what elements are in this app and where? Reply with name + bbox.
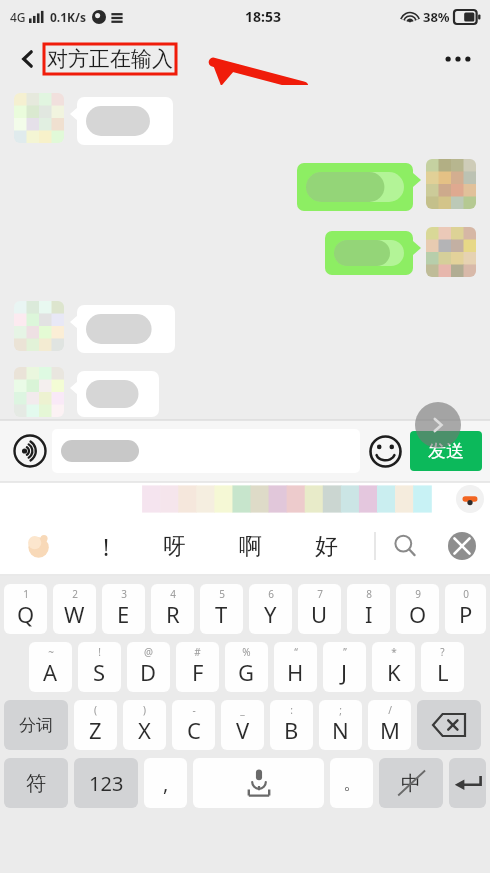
staticText: / bbox=[388, 703, 392, 717]
staticText: K bbox=[387, 657, 401, 687]
staticText: 1 bbox=[23, 587, 29, 601]
button[interactable]: ) bbox=[123, 700, 166, 750]
button[interactable]: # bbox=[176, 642, 219, 692]
button[interactable]: OK emoji bbox=[0, 516, 76, 576]
button[interactable]: 0 bbox=[445, 584, 486, 634]
staticText: ! bbox=[98, 645, 101, 659]
staticText: 5 bbox=[219, 587, 225, 601]
button[interactable]: Assistant bbox=[456, 485, 484, 513]
button[interactable]: Switch language bbox=[379, 758, 443, 808]
button[interactable]: % bbox=[225, 642, 268, 692]
staticText: V bbox=[236, 715, 250, 745]
button[interactable]: 8 bbox=[347, 584, 390, 634]
button[interactable]: 4 bbox=[151, 584, 194, 634]
button[interactable] bbox=[52, 429, 360, 473]
staticText: 18:53 bbox=[245, 7, 281, 26]
staticText: Z bbox=[89, 715, 102, 745]
button[interactable]: Emoji bbox=[360, 426, 410, 476]
staticText: O bbox=[409, 599, 427, 629]
staticText: P bbox=[459, 599, 473, 629]
button[interactable]: 对方正在输入 bbox=[44, 44, 176, 74]
staticText: H bbox=[287, 657, 304, 687]
staticText: 啊 bbox=[239, 532, 262, 561]
staticText: 9 bbox=[415, 587, 421, 601]
staticText: _ bbox=[240, 703, 245, 717]
button[interactable] bbox=[77, 97, 173, 145]
button[interactable]: Scroll to bottom bbox=[415, 402, 461, 448]
button[interactable]: 分词 bbox=[4, 700, 68, 750]
button[interactable]: 1 bbox=[4, 584, 47, 634]
button[interactable]: 3 bbox=[102, 584, 145, 634]
staticText: 7 bbox=[317, 587, 323, 601]
button[interactable]: 符 bbox=[4, 758, 68, 808]
button[interactable]: : bbox=[270, 700, 313, 750]
button[interactable]: , bbox=[144, 758, 187, 808]
button[interactable]: 。 bbox=[330, 758, 373, 808]
button[interactable]: Back bbox=[8, 39, 48, 79]
button[interactable]: Backspace bbox=[417, 700, 481, 750]
staticText: D bbox=[140, 657, 157, 687]
button[interactable] bbox=[325, 231, 413, 275]
button[interactable]: Voice input bbox=[8, 429, 52, 473]
button[interactable] bbox=[77, 305, 175, 353]
staticText: U bbox=[311, 599, 328, 629]
staticText: L bbox=[437, 657, 449, 687]
button[interactable]: Avatar bbox=[426, 227, 476, 277]
staticText: 38% bbox=[423, 8, 450, 26]
button[interactable]: 好 bbox=[288, 516, 364, 576]
button[interactable]: _ bbox=[221, 700, 264, 750]
staticText: # bbox=[194, 645, 201, 659]
staticText: 对方正在输入 bbox=[47, 46, 173, 72]
button[interactable]: - bbox=[172, 700, 215, 750]
button[interactable]: Search bbox=[376, 516, 434, 576]
button[interactable]: * bbox=[372, 642, 415, 692]
button[interactable]: / bbox=[368, 700, 411, 750]
button[interactable]: 6 bbox=[249, 584, 292, 634]
staticText: W bbox=[64, 599, 85, 629]
button[interactable]: ” bbox=[323, 642, 366, 692]
staticText: 。 bbox=[343, 772, 361, 795]
button[interactable]: ? bbox=[421, 642, 464, 692]
staticText: : bbox=[290, 703, 293, 717]
button[interactable]: @ bbox=[127, 642, 170, 692]
button[interactable] bbox=[77, 371, 159, 417]
staticText: @ bbox=[144, 645, 153, 659]
button[interactable]: Avatar bbox=[426, 159, 476, 209]
button[interactable]: 123 bbox=[74, 758, 138, 808]
button[interactable]: Avatar bbox=[14, 367, 64, 417]
staticText: ( bbox=[94, 703, 97, 717]
button[interactable]: 呀 bbox=[136, 516, 212, 576]
staticText: ~ bbox=[48, 645, 54, 659]
button[interactable]: Avatar bbox=[14, 301, 64, 351]
button[interactable]: More options bbox=[436, 37, 480, 81]
button[interactable]: ( bbox=[74, 700, 117, 750]
button[interactable]: 发送 bbox=[410, 431, 482, 471]
staticText: ) bbox=[143, 703, 146, 717]
button[interactable]: ! bbox=[78, 642, 121, 692]
staticText: G bbox=[238, 657, 255, 687]
button[interactable]: ~ bbox=[29, 642, 72, 692]
button[interactable]: 7 bbox=[298, 584, 341, 634]
staticText: Y bbox=[264, 599, 277, 629]
staticText: “ bbox=[294, 645, 298, 659]
button[interactable]: ; bbox=[319, 700, 362, 750]
button[interactable]: Avatar bbox=[14, 93, 64, 143]
button[interactable] bbox=[297, 163, 413, 211]
staticText: Q bbox=[17, 599, 35, 629]
button[interactable]: 9 bbox=[396, 584, 439, 634]
staticText: F bbox=[192, 657, 204, 687]
staticText: 6 bbox=[268, 587, 274, 601]
button[interactable]: ! bbox=[76, 516, 136, 576]
staticText: ? bbox=[440, 645, 445, 659]
button[interactable]: 5 bbox=[200, 584, 243, 634]
staticText: 好 bbox=[315, 532, 338, 561]
staticText: 4G bbox=[10, 9, 26, 25]
button[interactable]: 啊 bbox=[212, 516, 288, 576]
button[interactable]: “ bbox=[274, 642, 317, 692]
button[interactable]: Space bbox=[193, 758, 324, 808]
button[interactable]: Close keyboard bbox=[434, 516, 490, 576]
staticText: 4 bbox=[170, 587, 176, 601]
button[interactable]: Enter bbox=[449, 758, 486, 808]
staticText: ! bbox=[103, 531, 110, 562]
button[interactable]: 2 bbox=[53, 584, 96, 634]
